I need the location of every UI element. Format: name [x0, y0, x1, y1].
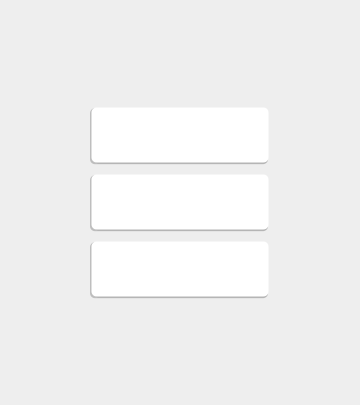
button[interactable]: Card 2 — [91, 174, 268, 229]
